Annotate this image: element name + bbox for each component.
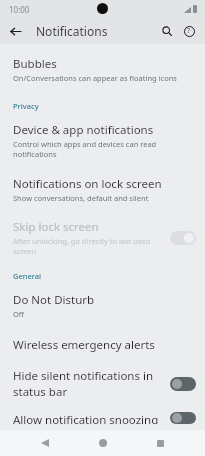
staticText: On/Conversations can appear as floating … bbox=[13, 73, 177, 83]
staticText: Hide silent notifications in status bar bbox=[13, 368, 164, 400]
button[interactable]: Toggle bbox=[170, 231, 196, 245]
staticText: 10:00 bbox=[9, 4, 30, 15]
staticText: Notifications on lock screen bbox=[13, 176, 162, 192]
button[interactable]: Skip lock screen bbox=[0, 213, 205, 262]
button[interactable]: Search bbox=[156, 20, 178, 42]
staticText: Bubbles bbox=[13, 56, 57, 72]
button[interactable]: Home bbox=[90, 430, 116, 456]
staticText: Control which apps and devices can read … bbox=[13, 139, 192, 159]
button[interactable]: Allow notification snoozing bbox=[0, 406, 205, 430]
button[interactable]: Back bbox=[32, 430, 58, 456]
staticText: Privacy bbox=[13, 101, 39, 111]
staticText: Notifications bbox=[36, 23, 108, 39]
button[interactable]: Help bbox=[178, 20, 200, 42]
staticText: Off bbox=[13, 309, 25, 319]
button[interactable]: Device & app notifications bbox=[0, 116, 205, 165]
button[interactable]: Do Not Disturb bbox=[0, 286, 205, 325]
button[interactable]: Hide silent notifications in status bar bbox=[0, 362, 205, 406]
button[interactable]: Toggle bbox=[170, 412, 196, 424]
button[interactable]: Back bbox=[4, 20, 26, 42]
staticText: Skip lock screen bbox=[13, 219, 99, 235]
button[interactable]: Notifications on lock screen bbox=[0, 170, 205, 209]
staticText: After unlocking, go directly to last use… bbox=[13, 236, 164, 256]
button[interactable]: Wireless emergency alerts bbox=[0, 331, 205, 359]
staticText: Wireless emergency alerts bbox=[13, 337, 155, 353]
button[interactable]: Recents bbox=[147, 430, 173, 456]
staticText: Show conversations, default and silent bbox=[13, 193, 149, 203]
staticText: Device & app notifications bbox=[13, 122, 154, 138]
button[interactable]: Bubbles bbox=[0, 50, 205, 89]
button[interactable]: Toggle bbox=[170, 377, 196, 391]
staticText: Allow notification snoozing bbox=[13, 412, 159, 424]
staticText: General bbox=[13, 271, 42, 281]
staticText: ? bbox=[187, 26, 191, 36]
staticText: Do Not Disturb bbox=[13, 292, 95, 308]
